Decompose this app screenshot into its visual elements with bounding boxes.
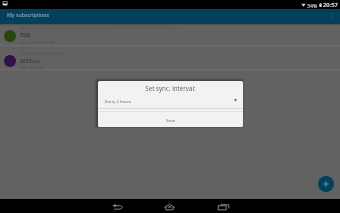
staticText: 2015.ics — [20, 58, 40, 65]
button[interactable]: Every 2 hours — [98, 96, 243, 108]
staticText: Aug 24, 2015 8:33:15 PM — [20, 41, 54, 45]
button[interactable]: Recent apps — [212, 199, 234, 213]
button[interactable]: https://tyr.dev001.net/2015.ics — [0, 46, 340, 70]
staticText: TISS — [20, 32, 31, 39]
button[interactable]: Home — [158, 199, 180, 213]
button[interactable]: More options — [324, 9, 340, 24]
button[interactable]: Add subscription — [318, 176, 334, 192]
button[interactable]: Save — [98, 110, 243, 127]
staticText: Save — [166, 118, 176, 124]
staticText: 20:57 — [323, 1, 338, 9]
button[interactable]: Back — [106, 199, 128, 213]
staticText: Sync. disabled — [20, 65, 44, 70]
staticText: Set sync. interval: — [145, 84, 196, 92]
staticText: 34% — [307, 2, 318, 9]
staticText: Every 2 hours — [105, 99, 132, 105]
button[interactable]: https://tiss.tuwien.ac.at/events/ical.xh… — [0, 24, 340, 46]
staticText: My subscriptions — [7, 11, 50, 18]
